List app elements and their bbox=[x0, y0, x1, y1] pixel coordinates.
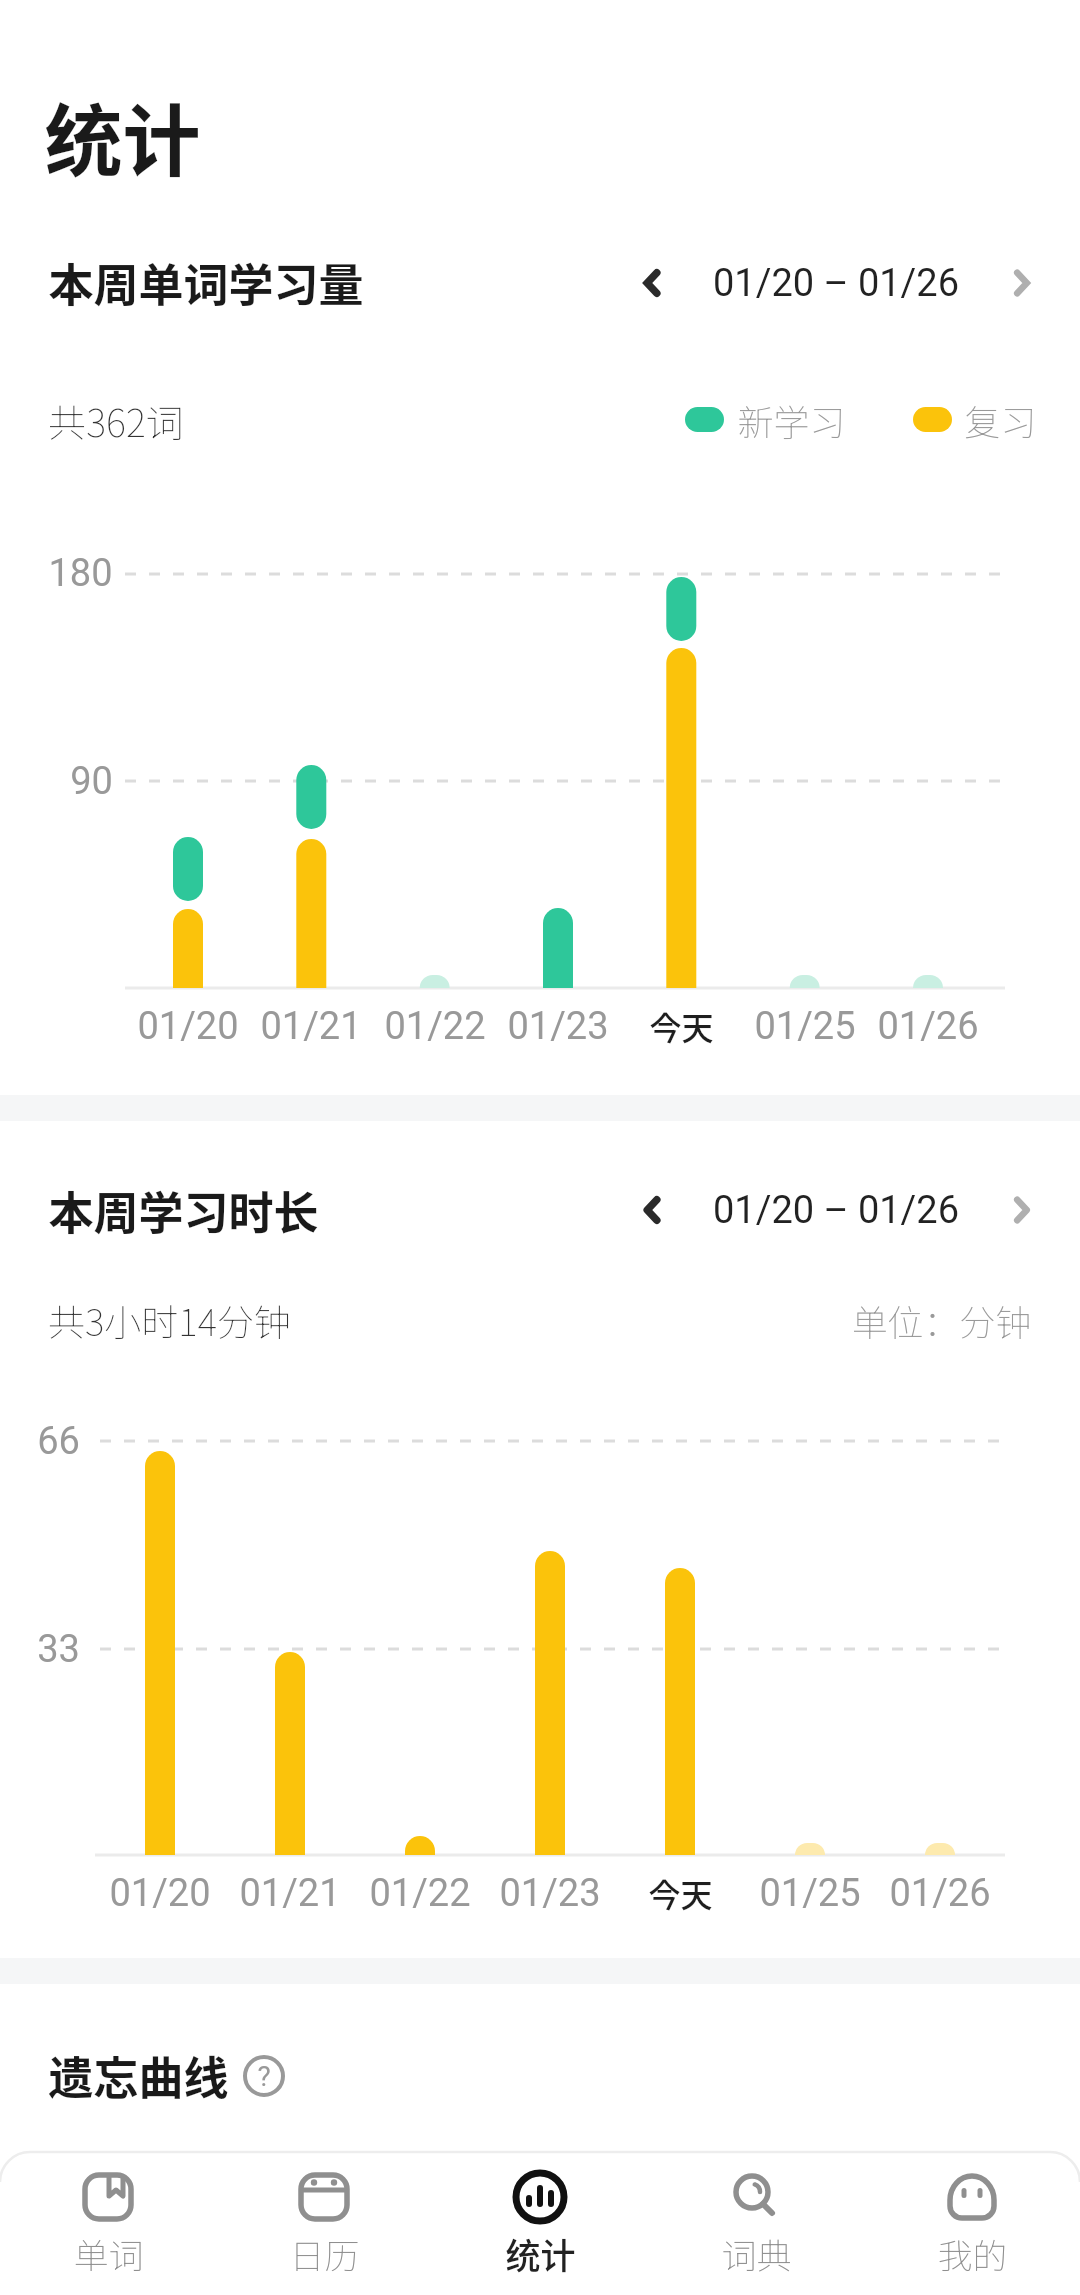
button[interactable]: 01/20 – 01/26 bbox=[656, 1175, 1016, 1245]
button[interactable] bbox=[622, 1180, 682, 1240]
staticText: 统计 bbox=[44, 80, 201, 193]
staticText: 单位：分钟 bbox=[851, 1294, 1032, 1346]
staticText: 我的 bbox=[937, 2228, 1008, 2279]
staticText: 01/23 bbox=[499, 1871, 601, 1916]
button[interactable]: ? bbox=[242, 2054, 286, 2098]
staticText: 180 bbox=[48, 551, 113, 596]
staticText: 01/20 bbox=[109, 1871, 211, 1916]
staticText: 复习 bbox=[964, 394, 1037, 446]
staticText: 01/20 – 01/26 bbox=[713, 1188, 959, 1233]
staticText: 日历 bbox=[289, 2228, 360, 2279]
button[interactable]: 日历 bbox=[216, 2152, 432, 2295]
staticText: ? bbox=[257, 2060, 271, 2093]
staticText: 本周单词学习量 bbox=[48, 250, 364, 315]
staticText: 01/23 bbox=[507, 1004, 609, 1049]
button[interactable] bbox=[622, 253, 682, 313]
staticText: 今天 bbox=[648, 1870, 713, 1916]
staticText: 01/25 bbox=[754, 1004, 856, 1049]
staticText: 90 bbox=[70, 759, 113, 804]
staticText: 01/20 bbox=[137, 1004, 239, 1049]
staticText: 66 bbox=[37, 1419, 80, 1464]
staticText: 01/22 bbox=[384, 1004, 486, 1049]
staticText: 共3小时14分钟 bbox=[48, 1293, 291, 1347]
staticText: 共362词 bbox=[48, 393, 184, 448]
button[interactable] bbox=[992, 253, 1052, 313]
button[interactable] bbox=[685, 407, 724, 432]
button[interactable]: 01/20 – 01/26 bbox=[656, 248, 1016, 318]
staticText: 遗忘曲线 bbox=[48, 2043, 229, 2108]
button[interactable]: 我的 bbox=[864, 2152, 1080, 2295]
staticText: 01/21 bbox=[239, 1871, 341, 1916]
staticText: 词典 bbox=[721, 2228, 792, 2279]
button[interactable] bbox=[913, 407, 952, 432]
staticText: 01/20 – 01/26 bbox=[713, 261, 959, 306]
button[interactable]: 单词 bbox=[0, 2152, 216, 2295]
staticText: 单词 bbox=[73, 2228, 144, 2279]
staticText: 01/21 bbox=[260, 1004, 362, 1049]
staticText: 01/26 bbox=[877, 1004, 979, 1049]
button[interactable]: 统计 bbox=[432, 2152, 648, 2295]
staticText: 33 bbox=[37, 1627, 80, 1672]
button[interactable]: 词典 bbox=[648, 2152, 864, 2295]
button[interactable] bbox=[992, 1180, 1052, 1240]
staticText: 今天 bbox=[649, 1003, 714, 1049]
staticText: 本周学习时长 bbox=[48, 1178, 319, 1243]
staticText: 新学习 bbox=[737, 394, 846, 446]
staticText: 01/22 bbox=[369, 1871, 471, 1916]
staticText: 01/26 bbox=[889, 1871, 991, 1916]
staticText: 01/25 bbox=[759, 1871, 861, 1916]
staticText: 统计 bbox=[505, 2228, 576, 2279]
